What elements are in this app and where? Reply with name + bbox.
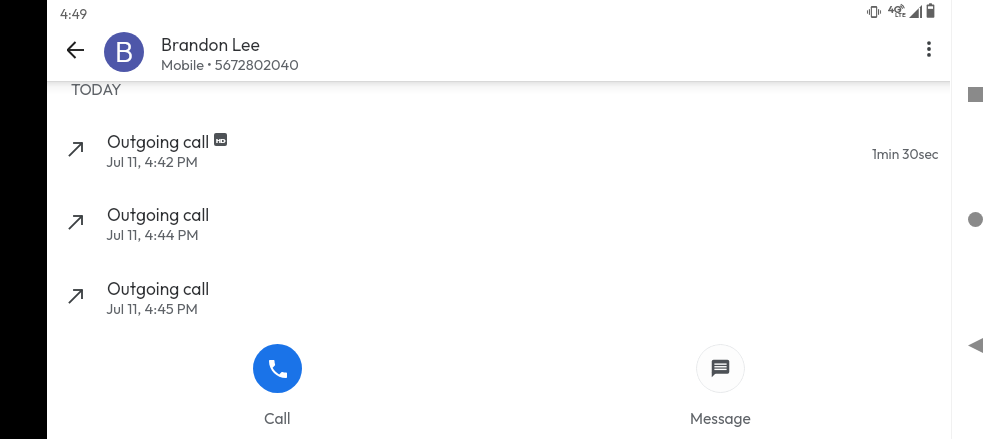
button[interactable]: Outgoing call bbox=[47, 276, 950, 334]
button[interactable]: More options bbox=[905, 25, 953, 73]
staticText: 1min 30sec bbox=[872, 145, 939, 162]
staticText: Jul 11, 4:44 PM bbox=[106, 225, 199, 244]
staticText: TODAY bbox=[71, 80, 122, 99]
button[interactable]: Back bbox=[51, 26, 99, 74]
staticText: 4G bbox=[888, 3, 902, 16]
button[interactable]: Outgoing call bbox=[47, 129, 950, 187]
staticText: HD bbox=[216, 136, 226, 144]
staticText: Mobile • 5672802040 bbox=[161, 55, 299, 73]
button[interactable]: Home bbox=[959, 203, 991, 235]
staticText: Outgoing call bbox=[107, 278, 210, 300]
staticText: Brandon Lee bbox=[161, 33, 260, 55]
button[interactable]: Back bbox=[959, 329, 991, 361]
staticText: 4:49 bbox=[60, 5, 88, 22]
button[interactable]: Recents bbox=[959, 78, 991, 110]
staticText: Outgoing call bbox=[107, 204, 210, 226]
button[interactable]: Call bbox=[237, 344, 317, 428]
staticText: Call bbox=[264, 408, 291, 428]
staticText: LTE bbox=[895, 11, 906, 19]
staticText: Jul 11, 4:45 PM bbox=[106, 299, 198, 318]
staticText: Jul 11, 4:42 PM bbox=[106, 152, 198, 171]
staticText: Message bbox=[690, 408, 751, 428]
staticText: B bbox=[115, 33, 134, 70]
staticText: Outgoing call bbox=[107, 131, 210, 153]
button[interactable]: Outgoing call bbox=[47, 202, 950, 260]
button[interactable]: Message bbox=[680, 344, 760, 428]
